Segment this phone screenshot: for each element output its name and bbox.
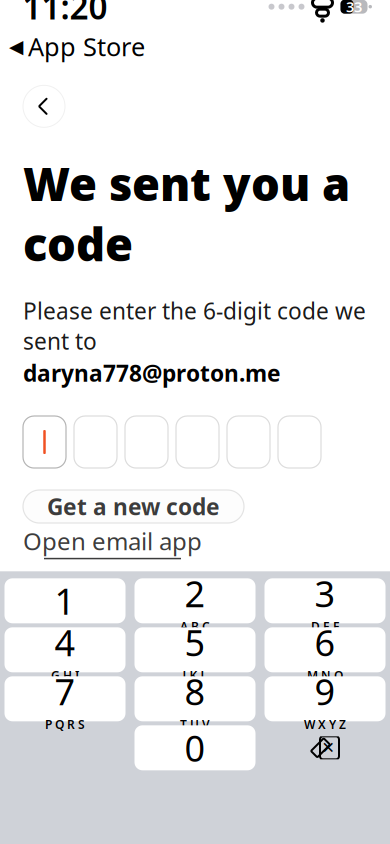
- button[interactable]: Back: [23, 85, 65, 127]
- staticText: 4: [54, 618, 75, 666]
- staticText: 3: [314, 569, 335, 617]
- button[interactable]: 2: [134, 578, 255, 623]
- button[interactable]: Get a new code: [23, 490, 244, 523]
- button[interactable]: 1: [4, 578, 125, 623]
- staticText: 7: [54, 667, 75, 715]
- button[interactable]: Code digit: [278, 416, 321, 468]
- staticText: 2: [184, 569, 205, 617]
- staticText: ◀: [9, 36, 23, 57]
- button[interactable]: Code digit: [74, 416, 117, 468]
- button[interactable]: Open email app: [23, 525, 202, 559]
- staticText: J K L: [182, 667, 207, 683]
- button[interactable]: Code digit: [227, 416, 270, 468]
- button[interactable]: 4: [4, 627, 125, 672]
- staticText: App Store: [28, 30, 145, 63]
- button[interactable]: 5: [134, 627, 255, 672]
- button[interactable]: Code digit: [176, 416, 219, 468]
- button[interactable]: Delete: [264, 725, 385, 770]
- staticText: Please enter the 6-digit code we sent to: [23, 296, 366, 356]
- button[interactable]: 0: [134, 725, 255, 770]
- staticText: 1: [54, 577, 75, 625]
- staticText: W X Y Z: [304, 716, 346, 732]
- staticText: M N O: [307, 667, 343, 683]
- staticText: G H I: [51, 667, 79, 683]
- button[interactable]: Code digit: [125, 416, 168, 468]
- button[interactable]: 7: [4, 676, 125, 721]
- staticText: Get a new code: [47, 491, 220, 522]
- staticText: A B C: [180, 618, 210, 634]
- staticText: ✕: [321, 739, 334, 757]
- button[interactable]: Code digit: [23, 416, 66, 468]
- staticText: 8: [184, 667, 205, 715]
- staticText: 33: [346, 0, 362, 16]
- staticText: 6: [314, 618, 335, 666]
- staticText: We sent you a code: [23, 153, 350, 274]
- staticText: T U V: [180, 716, 210, 732]
- staticText: 11:20: [22, 0, 107, 29]
- button[interactable]: 9: [264, 676, 385, 721]
- button[interactable]: ◀: [0, 29, 390, 63]
- staticText: 9: [314, 667, 335, 715]
- button[interactable]: 6: [264, 627, 385, 672]
- button[interactable]: 8: [134, 676, 255, 721]
- staticText: daryna778@proton.me: [23, 358, 281, 388]
- button[interactable]: 3: [264, 578, 385, 623]
- staticText: D E F: [311, 618, 339, 634]
- staticText: 0: [184, 724, 205, 772]
- staticText: P Q R S: [45, 716, 85, 732]
- staticText: 5: [184, 618, 205, 666]
- staticText: Open email app: [23, 525, 202, 557]
